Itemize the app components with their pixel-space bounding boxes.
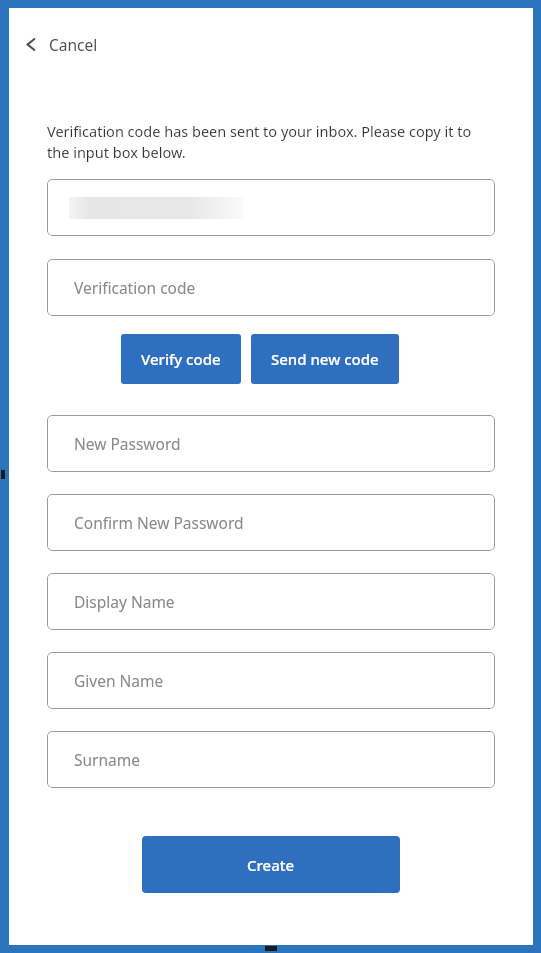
button[interactable]: Send new code <box>251 334 399 384</box>
button[interactable]: Surname <box>47 731 495 788</box>
button[interactable]: New Password <box>47 415 495 472</box>
button[interactable]: Verification code <box>47 259 495 316</box>
staticText: Display Name <box>74 591 175 612</box>
staticText: Surname <box>74 749 140 770</box>
button[interactable]: Create <box>142 836 400 893</box>
staticText: Verification code <box>74 277 196 298</box>
staticText: Verify code <box>141 349 221 369</box>
staticText: Confirm New Password <box>74 512 244 533</box>
staticText: Send new code <box>271 349 379 369</box>
button[interactable]: Confirm New Password <box>47 494 495 551</box>
button[interactable]: Display Name <box>47 573 495 630</box>
button[interactable]: Given Name <box>47 652 495 709</box>
button[interactable]: Cancel <box>9 30 114 59</box>
staticText: Verification code has been sent to your … <box>47 121 495 163</box>
button[interactable]: Verify code <box>121 334 241 384</box>
staticText: Given Name <box>74 670 164 691</box>
staticText: Cancel <box>49 34 98 55</box>
button[interactable] <box>47 179 495 236</box>
staticText: New Password <box>74 433 181 454</box>
staticText: Create <box>247 855 295 875</box>
